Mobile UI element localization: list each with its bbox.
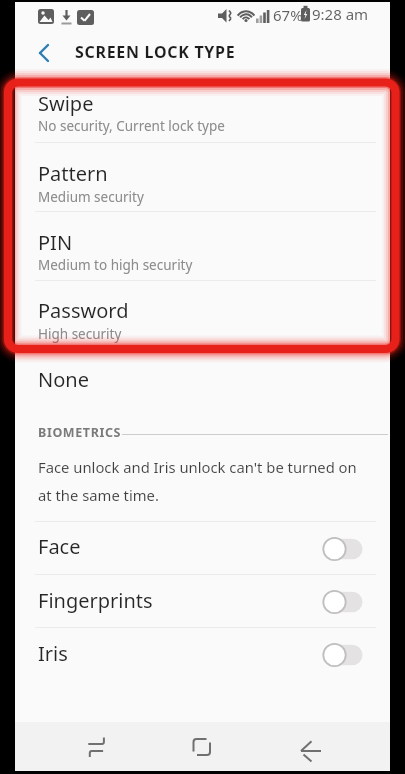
staticText: 9:28 am xyxy=(312,4,369,24)
button[interactable] xyxy=(280,722,340,771)
staticText: Fingerprints xyxy=(38,587,153,614)
staticText: at the same time. xyxy=(38,485,159,505)
staticText: High security xyxy=(38,325,122,343)
staticText: SCREEN LOCK TYPE xyxy=(75,41,236,63)
staticText: Iris xyxy=(38,640,68,667)
button[interactable] xyxy=(15,628,390,678)
button[interactable] xyxy=(15,285,390,349)
staticText: Medium security xyxy=(38,188,144,206)
button[interactable] xyxy=(15,354,390,402)
staticText: PIN xyxy=(38,229,73,256)
staticText: None xyxy=(38,366,89,393)
button[interactable] xyxy=(15,148,390,212)
staticText: No security, Current lock type xyxy=(38,117,225,135)
staticText: Face unlock and Iris unlock can't be tur… xyxy=(38,457,357,477)
staticText: Medium to high security xyxy=(38,256,193,274)
staticText: Pattern xyxy=(38,160,108,187)
staticText: 67% xyxy=(273,5,303,25)
button[interactable] xyxy=(15,78,390,142)
staticText: Face xyxy=(38,533,81,560)
staticText: BIOMETRICS xyxy=(38,424,122,441)
button[interactable] xyxy=(60,722,120,771)
button[interactable] xyxy=(172,722,232,771)
button[interactable] xyxy=(15,521,390,571)
button[interactable] xyxy=(15,217,390,281)
button[interactable] xyxy=(25,38,69,74)
staticText: Swipe xyxy=(38,90,94,117)
staticText: Password xyxy=(38,297,129,324)
button[interactable] xyxy=(15,575,390,625)
